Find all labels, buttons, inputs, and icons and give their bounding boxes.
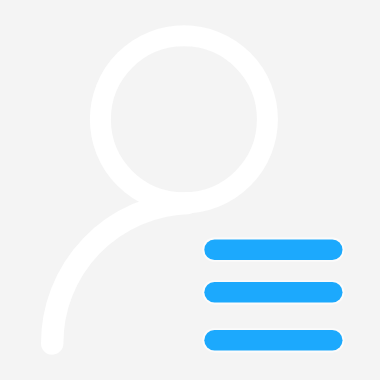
button[interactable]: Contacts bbox=[0, 0, 380, 380]
